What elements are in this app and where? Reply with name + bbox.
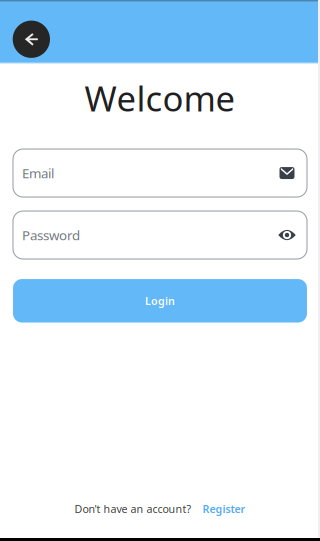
button[interactable]: Show password — [270, 218, 304, 252]
button[interactable]: Back — [13, 21, 50, 58]
button[interactable]: Register — [202, 502, 245, 516]
button[interactable]: Login — [13, 279, 307, 322]
button[interactable]: Email address — [270, 156, 304, 190]
staticText: Email — [22, 164, 54, 182]
staticText: Login — [145, 294, 175, 308]
staticText: Register — [202, 502, 245, 516]
staticText: Welcome — [84, 75, 235, 121]
staticText: Password — [22, 226, 80, 244]
staticText: Don't have an account? — [74, 502, 191, 516]
